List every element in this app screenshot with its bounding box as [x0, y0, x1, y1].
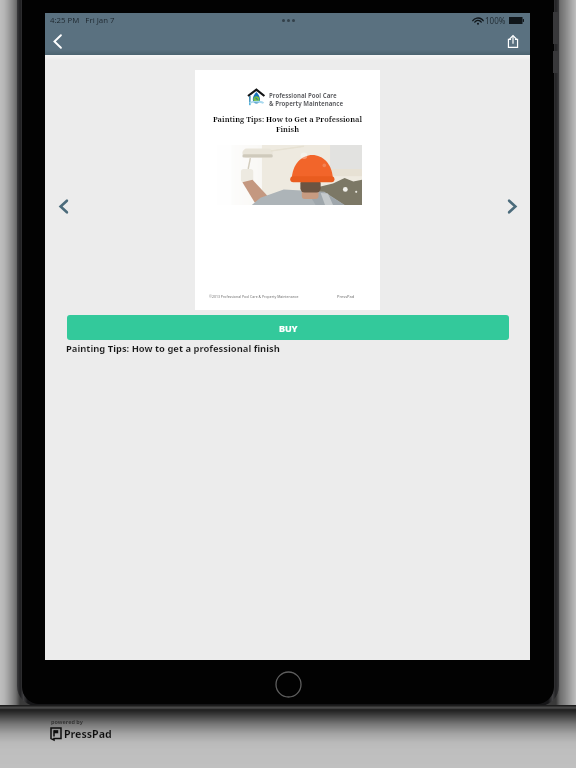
button[interactable]: BUY: [67, 315, 509, 340]
button[interactable]: Share: [502, 30, 524, 52]
staticText: PressPad: [337, 294, 355, 299]
staticText: 100%: [485, 15, 506, 26]
button[interactable]: Next page: [497, 191, 527, 221]
button[interactable]: Home: [275, 671, 302, 698]
staticText: BUY: [279, 322, 298, 334]
staticText: Professional Pool Care: [269, 91, 337, 99]
staticText: PressPad: [64, 727, 112, 741]
staticText: Painting Tips: How to Get a Professional…: [207, 114, 368, 134]
staticText: & Property Maintenance: [269, 99, 344, 107]
button[interactable]: Back: [45, 29, 69, 53]
staticText: powered by: [51, 718, 83, 725]
staticText: 4:25 PM Fri Jan 7: [50, 15, 115, 26]
staticText: ©2013 Professional Pool Care & Property …: [209, 294, 299, 299]
staticText: Painting Tips: How to get a professional…: [66, 342, 280, 355]
button[interactable]: Previous page: [48, 191, 78, 221]
